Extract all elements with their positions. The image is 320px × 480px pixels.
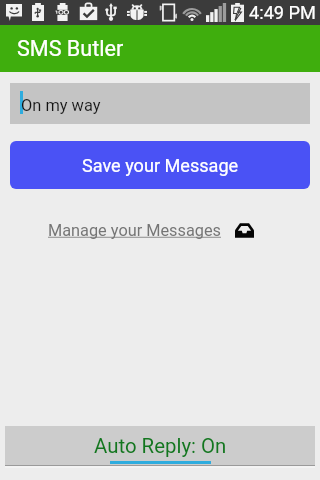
button[interactable]: Save your Message (10, 141, 310, 189)
button[interactable]: Manage your Messages (48, 221, 221, 240)
staticText: On my way (21, 96, 101, 115)
button[interactable]: Auto Reply: On (5, 426, 315, 468)
staticText: Save your Message (82, 155, 239, 176)
staticText: 4:49 PM (249, 2, 316, 23)
staticText: Auto Reply: On (94, 434, 227, 458)
button[interactable]: On my way (10, 83, 310, 124)
button[interactable]: Manage messages inbox (235, 223, 254, 238)
staticText: SMS Butler (17, 36, 124, 61)
